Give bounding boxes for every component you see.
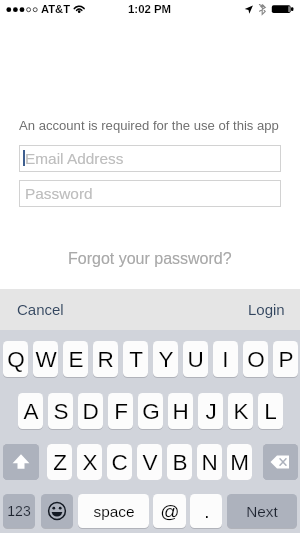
button[interactable]: A	[18, 393, 43, 429]
button[interactable]: space	[78, 494, 149, 528]
button[interactable]: D	[78, 393, 103, 429]
button[interactable]: J	[198, 393, 223, 429]
button[interactable]: Y	[153, 341, 178, 377]
button[interactable]: B	[167, 444, 192, 480]
staticText: P	[278, 347, 294, 372]
staticText: K	[233, 399, 249, 424]
staticText: U	[187, 347, 204, 372]
staticText: 123	[7, 503, 31, 519]
button[interactable]: R	[93, 341, 118, 377]
staticText: F	[114, 399, 128, 424]
button[interactable]: Shift	[3, 444, 39, 480]
staticText: H	[172, 399, 189, 424]
staticText: A	[23, 399, 39, 424]
button[interactable]: Password	[19, 180, 281, 207]
button[interactable]: Backspace	[263, 444, 298, 480]
staticText: Login	[248, 301, 285, 318]
staticText: An account is required for the use of th…	[19, 118, 279, 133]
staticText: @	[160, 501, 180, 522]
button[interactable]: Emoji keyboard	[41, 494, 73, 528]
staticText: T	[129, 347, 143, 372]
button[interactable]: Cancel	[0, 291, 81, 328]
staticText: S	[53, 399, 69, 424]
button[interactable]: O	[243, 341, 268, 377]
staticText: J	[205, 399, 217, 424]
button[interactable]: S	[48, 393, 73, 429]
button[interactable]: T	[123, 341, 148, 377]
button[interactable]: @	[153, 494, 186, 528]
staticText: space	[93, 503, 135, 520]
button[interactable]: W	[33, 341, 58, 377]
staticText: B	[172, 450, 188, 475]
staticText: D	[82, 399, 99, 424]
button[interactable]: Next	[227, 494, 297, 528]
staticText: I	[222, 347, 229, 372]
staticText: Q	[7, 347, 25, 372]
staticText: Email Address	[25, 150, 124, 167]
button[interactable]: E	[63, 341, 88, 377]
button[interactable]: 123	[3, 494, 35, 528]
staticText: .	[204, 501, 210, 522]
button[interactable]: N	[197, 444, 222, 480]
button[interactable]: K	[228, 393, 253, 429]
button[interactable]: X	[77, 444, 102, 480]
button[interactable]: Z	[47, 444, 72, 480]
staticText: O	[247, 347, 265, 372]
staticText: G	[142, 399, 160, 424]
staticText: N	[201, 450, 218, 475]
button[interactable]: I	[213, 341, 238, 377]
button[interactable]: P	[273, 341, 298, 377]
button[interactable]: Login	[233, 291, 300, 328]
button[interactable]: M	[227, 444, 252, 480]
staticText: Cancel	[17, 301, 64, 318]
button[interactable]: C	[107, 444, 132, 480]
staticText: V	[142, 450, 158, 475]
staticText: W	[35, 347, 57, 372]
staticText: Password	[25, 185, 93, 202]
button[interactable]: U	[183, 341, 208, 377]
staticText: AT&T	[41, 3, 70, 16]
staticText: C	[111, 450, 128, 475]
button[interactable]: G	[138, 393, 163, 429]
staticText: E	[68, 347, 84, 372]
staticText: Z	[53, 450, 67, 475]
staticText: Next	[246, 503, 278, 520]
button[interactable]: Email Address	[19, 145, 281, 172]
button[interactable]: H	[168, 393, 193, 429]
button[interactable]: Forgot your password?	[0, 250, 300, 268]
button[interactable]: .	[190, 494, 222, 528]
staticText: R	[97, 347, 114, 372]
staticText: Y	[158, 347, 174, 372]
staticText: Forgot your password?	[68, 250, 232, 268]
staticText: L	[264, 399, 277, 424]
button[interactable]: F	[108, 393, 133, 429]
button[interactable]: V	[137, 444, 162, 480]
button[interactable]: Q	[3, 341, 28, 377]
button[interactable]: L	[258, 393, 283, 429]
staticText: X	[82, 450, 98, 475]
staticText: 1:02 PM	[128, 3, 172, 16]
staticText: M	[230, 450, 249, 475]
